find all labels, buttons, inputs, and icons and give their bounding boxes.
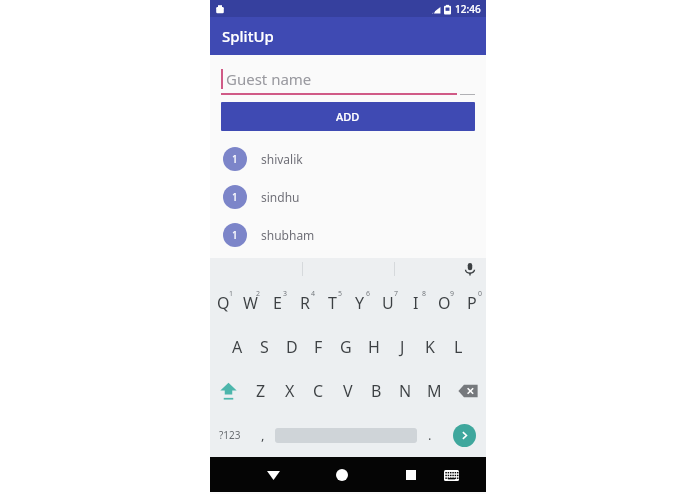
button[interactable]: S	[251, 325, 278, 369]
staticText: 1	[229, 289, 234, 299]
button[interactable]: Home	[329, 462, 355, 488]
staticText: F	[314, 336, 323, 358]
button[interactable]: Recents	[398, 462, 424, 488]
staticText: 2	[256, 289, 261, 299]
staticText: U	[382, 292, 394, 314]
staticText: 12:46	[455, 2, 481, 16]
button[interactable]: A	[224, 325, 251, 369]
staticText: J	[400, 336, 405, 358]
staticText: .	[428, 426, 432, 444]
button[interactable]: G	[332, 325, 360, 369]
button[interactable]: Backspace	[449, 369, 486, 413]
staticText: 1	[232, 190, 238, 204]
staticText: 6	[366, 289, 371, 299]
staticText: 1	[232, 228, 238, 242]
button[interactable]: X	[275, 369, 304, 413]
button[interactable]: 1	[210, 140, 486, 178]
staticText: P	[467, 292, 477, 314]
button[interactable]: T	[318, 280, 346, 325]
button[interactable]: N	[391, 369, 420, 413]
button[interactable]: U	[374, 280, 402, 325]
button[interactable]: ,	[250, 413, 275, 457]
staticText: 1	[232, 152, 238, 166]
button[interactable]: C	[304, 369, 333, 413]
staticText: 3	[283, 289, 288, 299]
button[interactable]: E	[264, 280, 291, 325]
staticText: G	[340, 336, 352, 358]
button[interactable]: V	[333, 369, 362, 413]
button[interactable]: Back	[260, 462, 286, 488]
staticText: Y	[355, 292, 365, 314]
button[interactable]: L	[444, 325, 472, 369]
staticText: Guest name	[226, 69, 312, 89]
staticText: O	[438, 292, 451, 314]
staticText: E	[273, 292, 282, 314]
staticText: M	[427, 380, 442, 402]
staticText: D	[286, 336, 298, 358]
button[interactable]: P	[458, 280, 486, 325]
button[interactable]: O	[430, 280, 458, 325]
staticText: Z	[256, 380, 266, 402]
button[interactable]: ?123	[210, 413, 250, 457]
button[interactable]: I	[402, 280, 430, 325]
button[interactable]: Shift	[210, 369, 246, 413]
button[interactable]: M	[420, 369, 449, 413]
button[interactable]: D	[278, 325, 305, 369]
button[interactable]: Q	[210, 280, 237, 325]
button[interactable]: 1	[210, 178, 486, 216]
staticText: shivalik	[261, 151, 303, 167]
staticText: sindhu	[261, 189, 300, 205]
button[interactable]: Enter	[453, 424, 476, 447]
button[interactable]: F	[305, 325, 332, 369]
staticText: S	[260, 336, 269, 358]
staticText: 4	[311, 289, 316, 299]
staticText: K	[425, 336, 435, 358]
button[interactable]: 1	[210, 216, 486, 254]
button[interactable]: B	[362, 369, 391, 413]
button[interactable]: K	[416, 325, 444, 369]
button[interactable]: Guest name	[221, 69, 457, 95]
staticText: Q	[217, 292, 230, 314]
button[interactable]: ADD	[221, 102, 475, 131]
staticText: B	[371, 380, 382, 402]
button[interactable]: R	[291, 280, 318, 325]
staticText: 9	[450, 289, 455, 299]
staticText: ADD	[336, 109, 360, 124]
staticText: T	[328, 292, 337, 314]
staticText: I	[413, 292, 419, 314]
staticText: C	[313, 380, 324, 402]
staticText: H	[368, 336, 380, 358]
staticText: SplitUp	[222, 26, 274, 46]
button[interactable]: Switch keyboard	[438, 462, 464, 488]
button[interactable]: H	[360, 325, 388, 369]
staticText: V	[343, 380, 353, 402]
button[interactable]: W	[237, 280, 264, 325]
staticText: N	[399, 380, 412, 402]
staticText: X	[285, 380, 295, 402]
staticText: W	[243, 292, 258, 314]
button[interactable]: Z	[246, 369, 275, 413]
staticText: shubham	[261, 227, 315, 243]
button[interactable]: Y	[346, 280, 374, 325]
staticText: ?123	[219, 428, 241, 442]
button[interactable]: Voice input	[462, 261, 478, 277]
staticText: R	[300, 292, 310, 314]
button[interactable]: J	[388, 325, 416, 369]
staticText: A	[232, 336, 243, 358]
staticText: L	[454, 336, 463, 358]
staticText: 5	[338, 289, 343, 299]
button[interactable]: .	[417, 413, 442, 457]
staticText: 8	[422, 289, 427, 299]
staticText: 0	[478, 289, 483, 299]
staticText: ,	[261, 426, 265, 444]
staticText: 7	[394, 289, 399, 299]
